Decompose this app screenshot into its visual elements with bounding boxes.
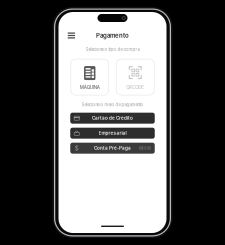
staticText: Selecione o tipo de compra xyxy=(85,47,139,52)
button[interactable]: Empresarial xyxy=(70,128,155,139)
button[interactable]: Cartão de Crédito xyxy=(70,113,155,124)
button[interactable]: Menu xyxy=(65,30,78,41)
button[interactable]: MÁQUINA xyxy=(71,59,109,95)
staticText: Cartão de Crédito xyxy=(92,115,133,121)
staticText: Empresarial xyxy=(98,130,126,136)
staticText: Conta Pré-Paga xyxy=(94,145,131,151)
staticText: MÁQUINA xyxy=(80,85,100,90)
staticText: R$ 0,00 xyxy=(139,146,151,150)
button[interactable]: $ xyxy=(70,143,155,154)
staticText: QRCODE xyxy=(126,85,144,90)
staticText: Selecione o meio de pagamento xyxy=(81,102,143,107)
button[interactable]: QRCODE xyxy=(116,59,154,95)
staticText: $ xyxy=(75,144,79,152)
staticText: Pagamento xyxy=(96,32,129,39)
